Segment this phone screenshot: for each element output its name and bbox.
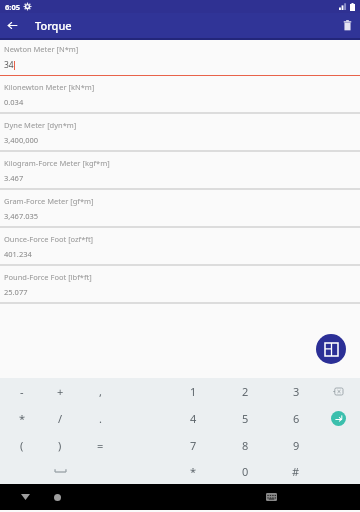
button[interactable]: Kilonewton Meter [kN*m] [0, 76, 360, 114]
button[interactable]: Home [44, 484, 70, 510]
button[interactable]: 5 [232, 405, 258, 431]
staticText: 3,400,000 [4, 135, 39, 145]
staticText: , [99, 384, 102, 399]
staticText: 3,467.035 [4, 211, 39, 221]
button[interactable]: * [9, 405, 35, 431]
staticText: 2 [242, 384, 249, 399]
staticText: Pound-Force Foot [lbf*ft] [4, 272, 92, 282]
button[interactable]: , [87, 378, 113, 404]
staticText: 34 [4, 59, 14, 71]
button[interactable]: 2 [232, 378, 258, 404]
staticText: = [97, 438, 104, 453]
button[interactable]: 1 [180, 378, 206, 404]
button[interactable]: 4 [180, 405, 206, 431]
staticText: Gram-Force Meter [gf*m] [4, 196, 94, 206]
staticText: 6 [293, 411, 300, 426]
button[interactable]: # [283, 459, 309, 484]
button[interactable]: + [47, 378, 73, 404]
staticText: 3.467 [4, 173, 24, 183]
staticText: 25.077 [4, 287, 28, 297]
staticText: ( [20, 438, 24, 453]
button[interactable]: * [180, 459, 206, 484]
staticText: Torque [35, 18, 72, 33]
staticText: # [292, 464, 300, 479]
button[interactable]: Ounce-Force Foot [ozf*ft] [0, 228, 360, 266]
button[interactable]: - [9, 378, 35, 404]
button[interactable]: = [87, 432, 113, 458]
staticText: 1 [190, 384, 197, 399]
button[interactable]: Compare units [316, 334, 346, 364]
button[interactable]: ) [47, 432, 73, 458]
staticText: Ounce-Force Foot [ozf*ft] [4, 234, 94, 244]
staticText: 3 [293, 384, 300, 399]
button[interactable]: Space [47, 459, 73, 484]
button[interactable]: 0 [232, 459, 258, 484]
staticText: Newton Meter [N*m] [4, 44, 79, 54]
button[interactable]: Back [12, 484, 38, 510]
staticText: Dyne Meter [dyn*m] [4, 120, 77, 130]
staticText: 0 [242, 464, 249, 479]
button[interactable]: Pound-Force Foot [lbf*ft] [0, 266, 360, 304]
staticText: 9 [293, 438, 300, 453]
button[interactable]: Gram-Force Meter [gf*m] [0, 190, 360, 228]
staticText: 401.234 [4, 249, 32, 259]
button[interactable]: Back [0, 13, 25, 38]
button[interactable]: 8 [232, 432, 258, 458]
button[interactable]: 3 [283, 378, 309, 404]
staticText: 6:05 [5, 2, 20, 12]
button[interactable]: Delete [335, 13, 360, 38]
staticText: 7 [190, 438, 197, 453]
button[interactable]: Switch keyboard [258, 484, 284, 510]
staticText: Kilonewton Meter [kN*m] [4, 82, 95, 92]
button[interactable]: Kilogram-Force Meter [kgf*m] [0, 152, 360, 190]
staticText: 4 [190, 411, 197, 426]
button[interactable]: ( [9, 432, 35, 458]
staticText: - [20, 384, 24, 399]
button[interactable]: Dyne Meter [dyn*m] [0, 114, 360, 152]
staticText: * [19, 411, 26, 426]
staticText: 8 [242, 438, 249, 453]
staticText: 0.034 [4, 97, 24, 107]
staticText: . [99, 411, 102, 426]
staticText: 5 [242, 411, 249, 426]
button[interactable]: 7 [180, 432, 206, 458]
staticText: Kilogram-Force Meter [kgf*m] [4, 158, 110, 168]
staticText: ) [58, 438, 62, 453]
button[interactable]: 9 [283, 432, 309, 458]
button[interactable]: . [87, 405, 113, 431]
button[interactable]: Backspace [325, 378, 351, 404]
staticText: + [57, 384, 64, 399]
staticText: * [190, 464, 197, 479]
button[interactable]: 6 [283, 405, 309, 431]
button[interactable]: Enter [325, 405, 351, 431]
button[interactable]: / [47, 405, 73, 431]
staticText: / [58, 411, 63, 426]
